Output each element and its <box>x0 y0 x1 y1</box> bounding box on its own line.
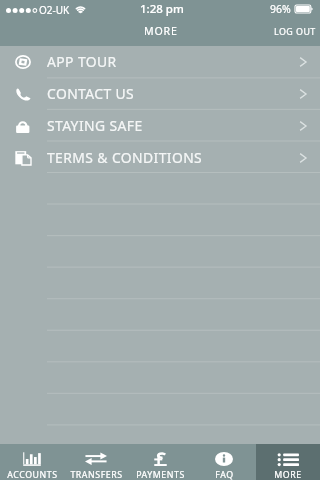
button[interactable]: TERMS & CONDITIONS <box>0 142 320 174</box>
button[interactable]: MORE <box>256 444 320 480</box>
staticText: CONTACT US <box>47 84 135 103</box>
button[interactable]: APP TOUR <box>0 46 320 78</box>
button[interactable]: TRANSFERS <box>64 444 128 480</box>
staticText: ACCOUNTS <box>7 469 58 480</box>
button[interactable]: CONTACT US <box>0 78 320 110</box>
staticText: MORE <box>144 24 178 38</box>
staticText: TRANSFERS <box>70 469 123 480</box>
staticText: FAQ <box>215 469 234 480</box>
staticText: MORE <box>274 469 302 480</box>
staticText: PAYMENTS <box>136 469 185 480</box>
staticText: TERMS & CONDITIONS <box>47 148 203 167</box>
button[interactable]: PAYMENTS <box>128 444 192 480</box>
staticText: STAYING SAFE <box>47 116 143 135</box>
staticText: O2-UK <box>39 3 70 17</box>
staticText: 96% <box>270 2 291 16</box>
button[interactable]: STAYING SAFE <box>0 110 320 142</box>
button[interactable]: ACCOUNTS <box>0 444 64 480</box>
staticText: LOG OUT <box>274 25 316 37</box>
staticText: APP TOUR <box>47 52 117 71</box>
staticText: 1:28 pm <box>140 1 184 17</box>
button[interactable]: LOG OUT <box>265 20 320 42</box>
button[interactable]: FAQ <box>192 444 256 480</box>
